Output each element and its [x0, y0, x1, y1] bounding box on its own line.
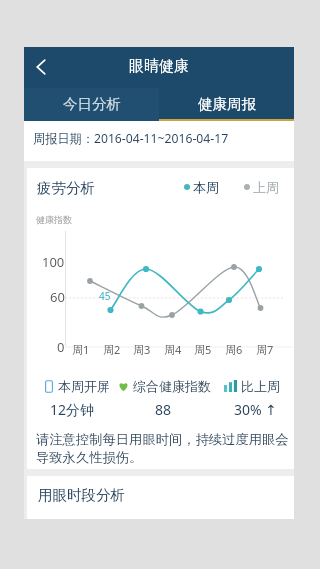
button[interactable]: 综合健康指数	[112, 378, 222, 420]
button[interactable]: Back	[25, 51, 57, 83]
staticText: 周3	[133, 342, 151, 356]
staticText: 0	[57, 338, 65, 354]
staticText: 周2	[103, 342, 121, 356]
staticText: 12分钟	[50, 400, 95, 419]
staticText: 眼睛健康	[129, 57, 189, 76]
staticText: 比上周	[241, 378, 280, 394]
staticText: 用眼时段分析	[38, 486, 125, 504]
staticText: 综合健康指数	[133, 378, 211, 394]
staticText: 45	[99, 289, 111, 303]
staticText: 上周	[253, 179, 279, 195]
staticText: 健康周报	[198, 95, 256, 113]
button[interactable]: 本周	[184, 179, 219, 195]
staticText: 本周	[193, 179, 219, 195]
staticText: 本周开屏	[58, 378, 110, 394]
button[interactable]: 比上周	[218, 378, 320, 420]
staticText: 周7	[256, 342, 274, 356]
button[interactable]: 上周	[244, 179, 279, 195]
staticText: 30% ↑	[234, 400, 278, 419]
staticText: 疲劳分析	[37, 179, 95, 195]
staticText: 100	[42, 253, 65, 269]
staticText: 周6	[225, 342, 243, 356]
button[interactable]: 今日分析	[24, 88, 159, 121]
staticText: 60	[50, 288, 65, 304]
staticText: 周5	[194, 342, 212, 356]
staticText: 请注意控制每日用眼时间，持续过度用眼会导致永久性损伤。	[36, 431, 291, 466]
button[interactable]: 本周开屏	[38, 378, 148, 420]
staticText: 健康指数	[36, 214, 72, 225]
button[interactable]: 健康周报	[159, 88, 294, 121]
staticText: 周报日期：2016-04-11~2016-04-17	[33, 130, 229, 147]
staticText: 今日分析	[63, 95, 121, 113]
staticText: 周4	[164, 342, 182, 356]
staticText: 88	[155, 400, 172, 419]
staticText: 周1	[72, 342, 90, 356]
